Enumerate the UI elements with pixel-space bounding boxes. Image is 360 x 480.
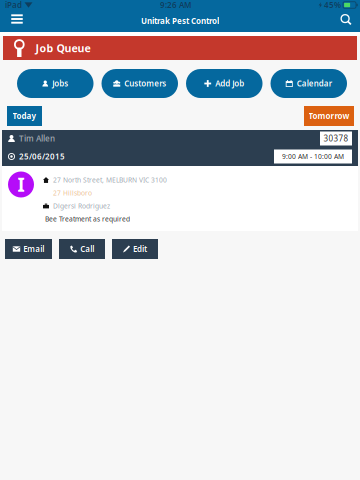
- staticText: 9:00 AM - 10:00 AM: [282, 152, 344, 161]
- button[interactable]: Today: [7, 106, 42, 126]
- staticText: Job Queue: [36, 41, 91, 55]
- staticText: 27 Hillsboro: [53, 189, 92, 197]
- staticText: Jobs: [52, 78, 68, 89]
- staticText: iPad: [5, 0, 22, 10]
- staticText: Calendar: [297, 78, 332, 89]
- staticText: Unitrak Pest Control: [141, 16, 219, 26]
- staticText: Customers: [124, 78, 166, 89]
- button[interactable]: Edit: [112, 239, 158, 259]
- staticText: Call: [80, 244, 94, 254]
- button[interactable]: Add Job: [186, 69, 262, 98]
- staticText: Email: [23, 244, 44, 254]
- staticText: Tomorrow: [308, 111, 349, 121]
- button[interactable]: Calendar: [270, 69, 347, 98]
- button[interactable]: Call: [59, 239, 105, 259]
- staticText: 25/06/2015: [19, 151, 65, 162]
- staticText: Dlgersi Rodriguez: [53, 202, 110, 210]
- button[interactable]: Email: [5, 239, 52, 259]
- staticText: Edit: [133, 244, 147, 254]
- button[interactable]: Menu: [0, 10, 34, 32]
- staticText: 45%: [324, 0, 341, 10]
- staticText: 9:26 AM: [160, 0, 191, 10]
- staticText: 30378: [323, 133, 348, 144]
- staticText: 27 North Street, MELBURN VIC 3100: [53, 176, 167, 184]
- staticText: I: [17, 172, 24, 197]
- button[interactable]: Jobs: [17, 69, 93, 98]
- staticText: Add Job: [215, 78, 244, 89]
- button[interactable]: Tomorrow: [304, 106, 354, 126]
- staticText: Bee Treatment as required: [45, 215, 130, 223]
- staticText: Today: [12, 111, 36, 121]
- button[interactable]: Search: [326, 10, 360, 32]
- button[interactable]: Customers: [101, 69, 178, 98]
- staticText: Tim Allen: [19, 133, 55, 144]
